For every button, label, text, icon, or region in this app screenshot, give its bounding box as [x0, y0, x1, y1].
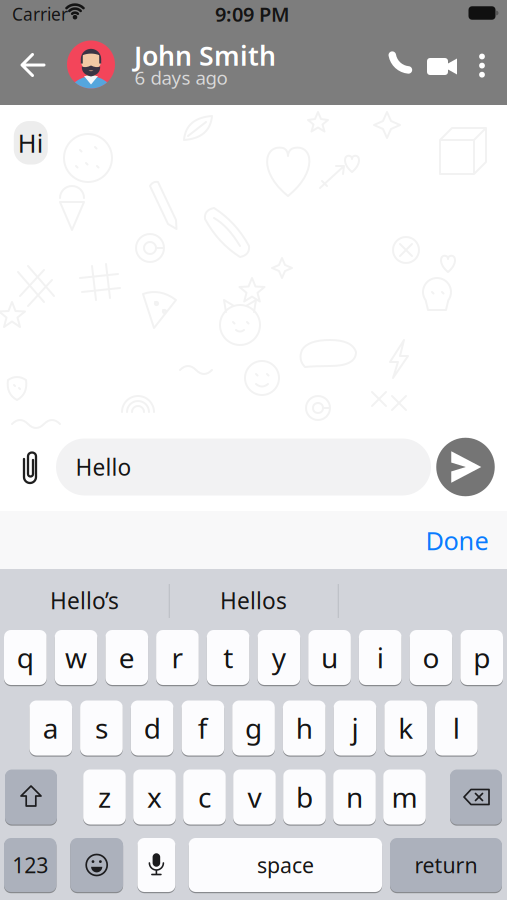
staticText: u: [321, 639, 338, 676]
button[interactable]: Hello’s: [4, 576, 164, 624]
button[interactable]: [378, 48, 418, 80]
staticText: z: [98, 778, 111, 816]
staticText: 9:09 PM: [215, 1, 290, 27]
staticText: Done: [425, 524, 488, 557]
button[interactable]: y: [257, 630, 300, 685]
staticText: Hello: [75, 452, 131, 482]
button[interactable]: [5, 769, 57, 824]
staticText: x: [147, 778, 162, 816]
staticText: c: [198, 778, 211, 816]
staticText: b: [296, 778, 313, 816]
button[interactable]: w: [55, 630, 97, 685]
button[interactable]: x: [133, 769, 176, 824]
button[interactable]: s: [80, 700, 123, 755]
button[interactable]: r: [156, 630, 199, 685]
staticText: a: [43, 709, 59, 747]
button[interactable]: [436, 438, 495, 496]
staticText: j: [351, 709, 358, 747]
staticText: r: [171, 639, 183, 676]
staticText: h: [296, 709, 313, 747]
staticText: Hello’s: [50, 585, 119, 615]
staticText: t: [223, 639, 233, 676]
button[interactable]: n: [333, 769, 376, 824]
button[interactable]: u: [308, 630, 351, 685]
staticText: q: [17, 639, 34, 676]
button[interactable]: b: [283, 769, 326, 824]
button[interactable]: h: [283, 700, 326, 755]
staticText: Hi: [18, 126, 44, 160]
button[interactable]: [67, 40, 115, 88]
staticText: y: [272, 639, 286, 676]
staticText: 6 days ago: [134, 65, 227, 90]
staticText: Carrier: [12, 2, 68, 25]
button[interactable]: Hellos: [173, 576, 333, 624]
staticText: w: [65, 639, 87, 676]
button[interactable]: q: [4, 630, 47, 685]
staticText: f: [198, 709, 208, 747]
staticText: e: [119, 639, 135, 676]
button[interactable]: return: [390, 838, 502, 892]
staticText: d: [144, 709, 161, 747]
button[interactable]: [450, 769, 502, 824]
staticText: o: [422, 639, 439, 676]
button[interactable]: j: [334, 700, 376, 755]
staticText: return: [414, 851, 477, 879]
staticText: m: [391, 778, 417, 816]
staticText: g: [245, 709, 262, 747]
staticText: s: [95, 709, 108, 747]
button[interactable]: [11, 54, 55, 76]
staticText: i: [377, 639, 384, 676]
button[interactable]: [21, 452, 39, 486]
staticText: John Smith: [134, 38, 276, 73]
button[interactable]: z: [83, 769, 126, 824]
button[interactable]: l: [435, 700, 478, 755]
staticText: l: [453, 709, 460, 747]
button[interactable]: v: [233, 769, 276, 824]
button[interactable]: 123: [4, 838, 56, 892]
staticText: v: [247, 778, 261, 816]
button[interactable]: [137, 838, 175, 892]
button[interactable]: [427, 57, 457, 76]
button[interactable]: Hello: [56, 438, 431, 495]
button[interactable]: space: [189, 838, 382, 892]
button[interactable]: d: [131, 700, 173, 755]
button[interactable]: i: [359, 630, 402, 685]
button[interactable]: [472, 52, 492, 78]
staticText: p: [473, 639, 490, 676]
staticText: space: [257, 851, 314, 879]
button[interactable]: [70, 838, 123, 892]
button[interactable]: o: [410, 630, 452, 685]
button[interactable]: k: [384, 700, 427, 755]
staticText: n: [346, 778, 363, 816]
staticText: Hellos: [220, 585, 287, 615]
button[interactable]: Done: [419, 518, 495, 562]
button[interactable]: t: [207, 630, 249, 685]
button[interactable]: e: [105, 630, 148, 685]
staticText: k: [398, 709, 413, 747]
button[interactable]: a: [29, 700, 72, 755]
button[interactable]: c: [183, 769, 226, 824]
button[interactable]: m: [383, 769, 426, 824]
button[interactable]: f: [181, 700, 224, 755]
button[interactable]: g: [232, 700, 275, 755]
button[interactable]: p: [460, 630, 503, 685]
staticText: 123: [12, 851, 48, 879]
